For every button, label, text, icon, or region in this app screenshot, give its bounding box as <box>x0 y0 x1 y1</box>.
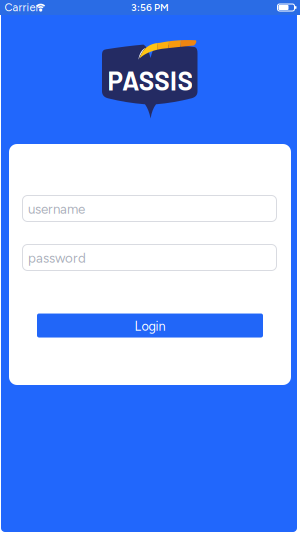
staticText: Login <box>134 319 165 334</box>
button[interactable]: password <box>22 244 276 270</box>
button[interactable]: username <box>22 195 276 221</box>
staticText: PASSIS <box>107 64 192 96</box>
button[interactable]: Login <box>37 313 263 337</box>
staticText: username <box>28 201 85 217</box>
staticText: 3:56 PM <box>131 1 169 14</box>
staticText: password <box>28 250 86 266</box>
staticText: Carrier <box>4 1 39 14</box>
